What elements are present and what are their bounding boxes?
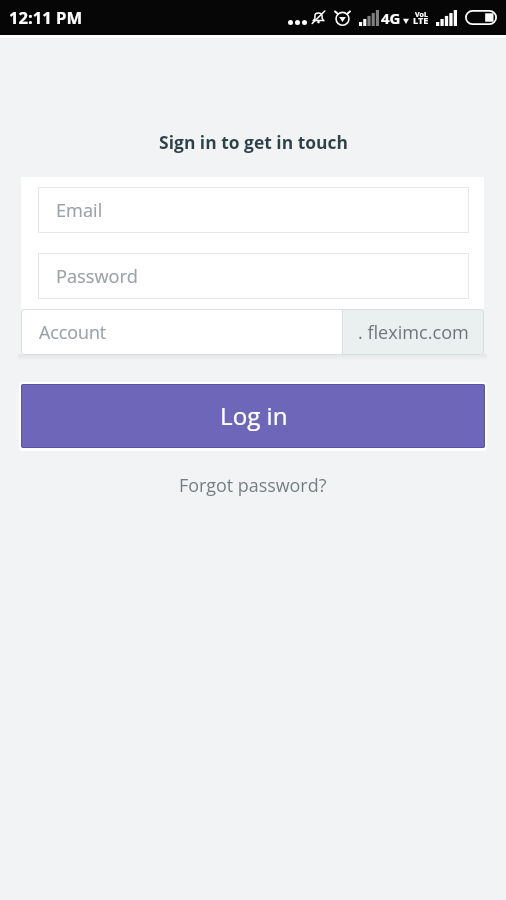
staticText: Account [39,320,107,344]
button[interactable]: Password [38,253,469,299]
button[interactable]: Forgot password? [173,471,333,499]
staticText: 4G [381,8,401,28]
staticText: Log in [220,399,288,432]
staticText: Forgot password? [179,473,327,497]
button[interactable]: Log in [21,384,485,448]
staticText: Password [56,264,138,289]
staticText: 12:11 PM [9,6,83,29]
staticText: Sign in to get in touch [159,130,348,154]
staticText: Email [56,198,103,223]
button[interactable]: Email [38,187,469,233]
button[interactable]: Account [21,309,342,355]
staticText: LTE [413,14,429,26]
other: Battery [465,10,497,25]
staticText: VoL [415,10,428,20]
staticText: . fleximc.com [358,320,469,345]
